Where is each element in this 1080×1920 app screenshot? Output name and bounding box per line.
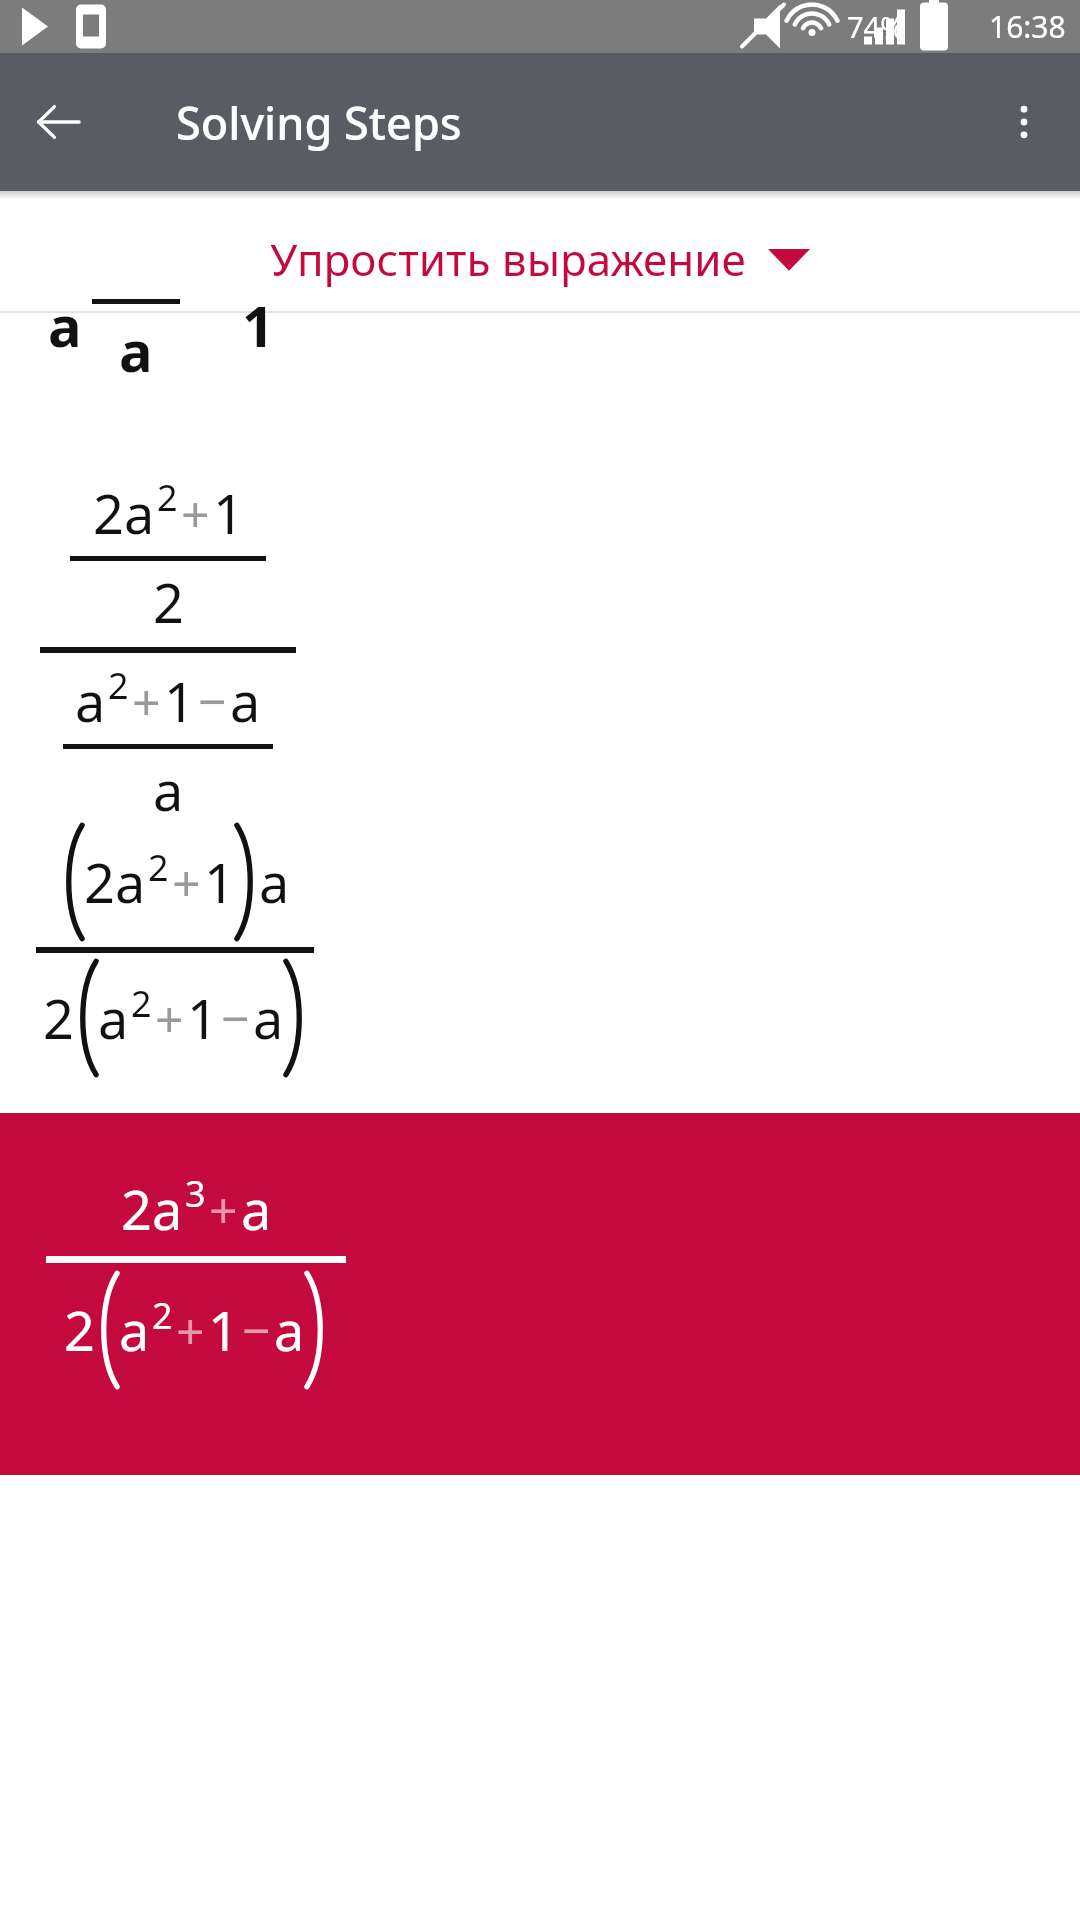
staticText: a: [230, 664, 261, 738]
staticText: 1: [213, 476, 244, 550]
staticText: +: [181, 479, 210, 547]
staticText: a: [119, 312, 153, 377]
staticText: a: [253, 981, 284, 1055]
staticText: +: [172, 848, 201, 916]
staticText: +: [132, 667, 161, 735]
staticText: Упростить выражение: [270, 229, 746, 289]
staticText: a: [259, 845, 290, 919]
staticText: 1: [187, 981, 218, 1055]
staticText: +: [176, 1296, 205, 1364]
staticText: 1: [204, 845, 235, 919]
staticText: a: [98, 981, 129, 1055]
button[interactable]: Упростить выражение: [0, 219, 1080, 299]
staticText: a: [274, 1293, 305, 1367]
staticText: 74%: [847, 7, 905, 46]
staticText: 16:38: [989, 6, 1066, 47]
staticText: a: [119, 1293, 150, 1367]
staticText: 2a: [121, 1172, 183, 1246]
staticText: 2: [152, 1291, 173, 1340]
staticText: −: [198, 667, 227, 735]
staticText: +: [155, 984, 184, 1052]
staticText: 1: [242, 287, 275, 357]
staticText: a: [153, 753, 184, 813]
staticText: 2: [148, 843, 169, 892]
staticText: 2a: [93, 476, 155, 550]
button[interactable]: 2a: [0, 813, 1080, 1113]
staticText: 2a: [84, 845, 146, 919]
staticText: 2: [64, 1293, 95, 1367]
button[interactable]: Back: [20, 84, 96, 160]
staticText: 2: [43, 981, 74, 1055]
staticText: −: [242, 1296, 271, 1364]
staticText: 2: [153, 565, 184, 639]
staticText: −: [221, 984, 250, 1052]
staticText: +: [209, 1175, 238, 1243]
staticText: a: [75, 664, 106, 738]
staticText: 1: [164, 664, 195, 738]
staticText: a: [48, 287, 82, 357]
staticText: 3: [185, 1169, 206, 1218]
staticText: Solving Steps: [176, 92, 462, 153]
staticText: 2: [131, 979, 152, 1028]
staticText: 1: [208, 1293, 239, 1367]
button[interactable]: 2a: [0, 383, 1080, 813]
staticText: a: [241, 1172, 272, 1246]
button[interactable]: More options: [986, 84, 1062, 160]
staticText: 2: [108, 661, 129, 710]
button[interactable]: 2a: [0, 1113, 1080, 1475]
staticText: 2: [157, 473, 178, 522]
